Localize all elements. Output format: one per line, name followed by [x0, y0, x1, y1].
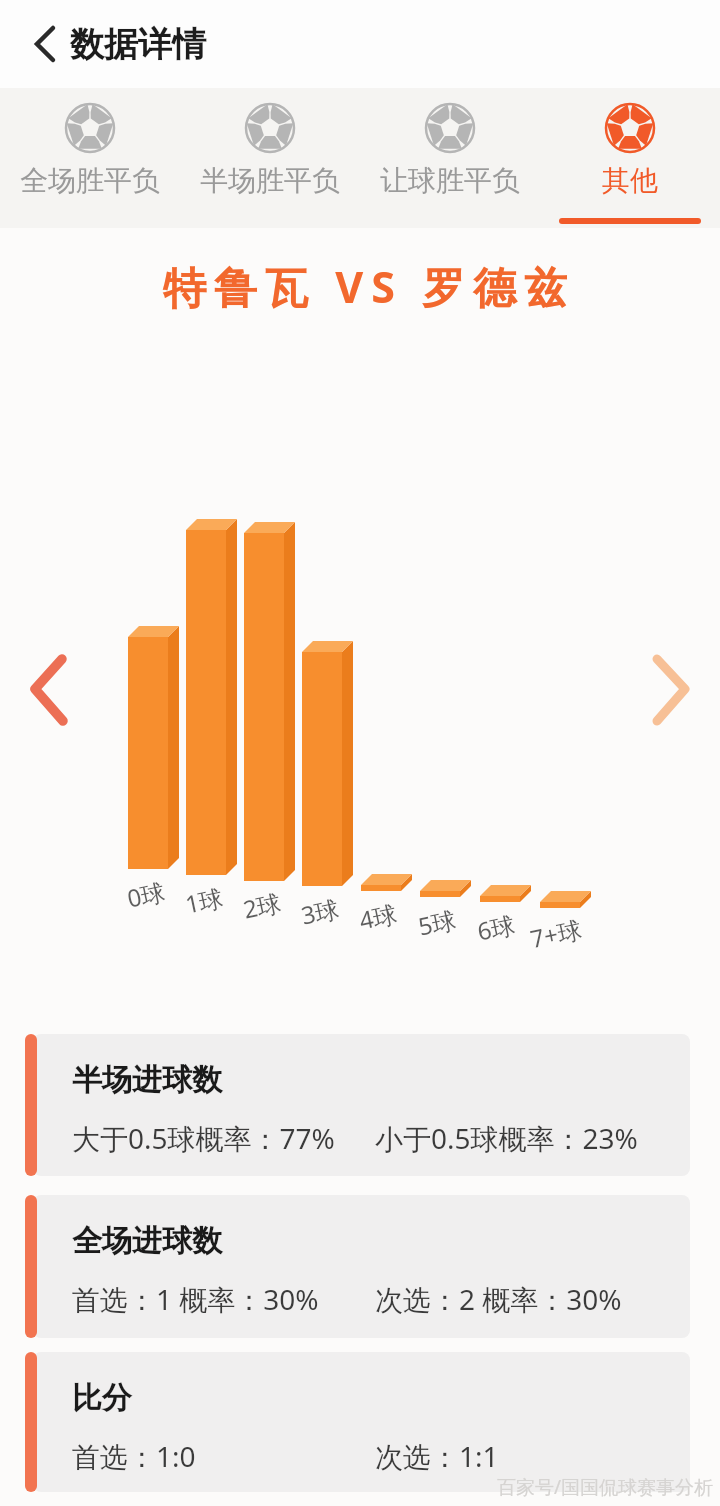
staticText: 让球胜平负	[380, 163, 520, 198]
staticText: 比分	[72, 1379, 132, 1417]
staticText: 其他	[602, 163, 658, 198]
staticText: 1球	[182, 880, 226, 921]
button[interactable]: 数据详情	[0, 0, 206, 88]
staticText: 次选：2 概率：30%	[375, 1280, 622, 1318]
staticText: 数据详情	[70, 23, 206, 66]
button[interactable]: 全场胜平负	[0, 88, 180, 228]
button[interactable]: 让球胜平负	[360, 88, 540, 228]
staticText: 首选：1:0	[72, 1437, 196, 1475]
button[interactable]: 半场胜平负	[180, 88, 360, 228]
staticText: 全场进球数	[72, 1222, 222, 1260]
staticText: 半场进球数	[72, 1061, 222, 1099]
button[interactable]: 其他	[540, 88, 720, 228]
staticText: 小于0.5球概率：23%	[375, 1119, 638, 1157]
staticText: 百家号/国国侃球赛事分析	[497, 1474, 714, 1500]
button[interactable]: 全场进球数	[25, 1195, 690, 1338]
staticText: 半场胜平负	[200, 163, 340, 198]
button[interactable]: 半场进球数	[25, 1034, 690, 1176]
staticText: 6球	[474, 907, 518, 948]
staticText: 首选：1 概率：30%	[72, 1280, 319, 1318]
staticText: 大于0.5球概率：77%	[72, 1119, 335, 1157]
button[interactable]: 比分	[25, 1352, 690, 1492]
staticText: 全场胜平负	[20, 163, 160, 198]
staticText: 3球	[298, 891, 342, 932]
staticText: 7+球	[527, 912, 585, 955]
staticText: 2球	[240, 885, 284, 926]
staticText: 5球	[415, 902, 459, 943]
staticText: 0球	[124, 874, 168, 915]
staticText: 4球	[356, 896, 400, 937]
staticText: 次选：1:1	[375, 1437, 499, 1475]
staticText: 特鲁瓦 VS 罗德兹	[9, 257, 720, 316]
